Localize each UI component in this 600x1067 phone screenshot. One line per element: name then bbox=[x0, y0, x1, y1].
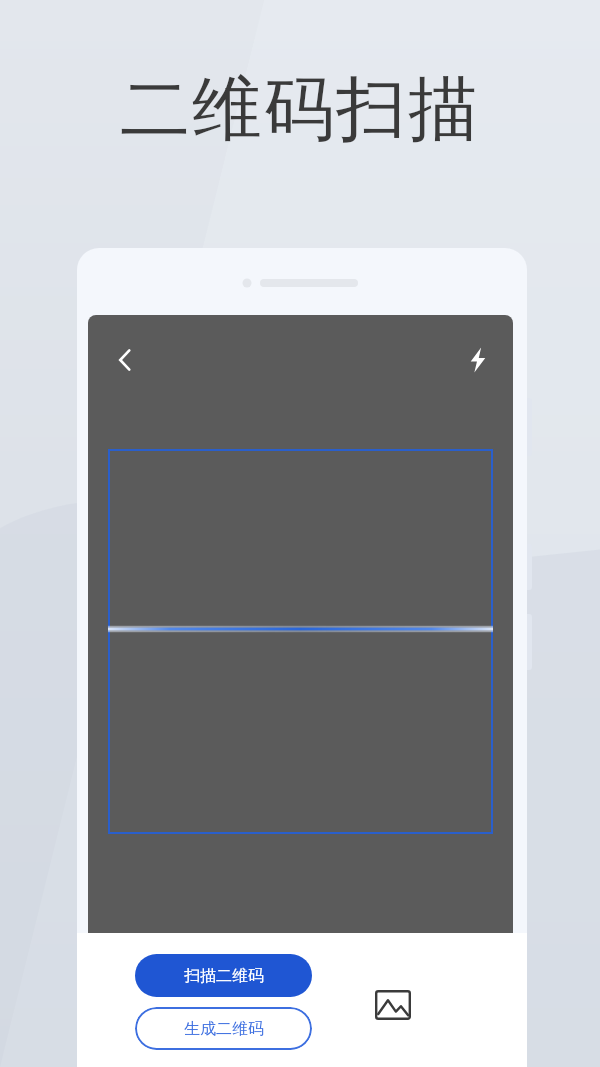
staticText: 扫描二维码 bbox=[184, 966, 264, 986]
button[interactable]: Choose from gallery bbox=[365, 977, 421, 1033]
button[interactable]: Flash bbox=[453, 335, 503, 385]
staticText: 二维码扫描 bbox=[0, 66, 600, 154]
button[interactable]: 扫描二维码 bbox=[135, 954, 312, 997]
button[interactable]: 生成二维码 bbox=[135, 1007, 312, 1050]
staticText: 生成二维码 bbox=[184, 1019, 264, 1039]
button[interactable]: Back bbox=[100, 335, 150, 385]
